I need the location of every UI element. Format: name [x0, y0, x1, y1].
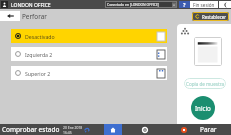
button[interactable]: Comprobar estado: [2, 124, 60, 135]
button[interactable]: Copia de muestra: [184, 78, 226, 89]
staticText: Fin sesión: [193, 2, 215, 8]
staticText: Conectado en [LONDON OFFICE]: [107, 2, 159, 7]
button[interactable]: Superior 2: [11, 66, 167, 80]
button[interactable]: Inicio: [191, 96, 215, 120]
staticText: Restablecer: [202, 14, 227, 20]
button[interactable]: Atrás: [0, 11, 20, 21]
button[interactable]: Atrás: [79, 124, 95, 135]
button[interactable]: Conectado en [LONDON OFFICE]: [105, 1, 177, 8]
staticText: LONDON OFFICE: [11, 2, 51, 9]
staticText: Comprobar estado: [2, 125, 60, 134]
staticText: Desactivado: [25, 33, 55, 40]
button[interactable]: Restablecer: [192, 12, 229, 21]
staticText: ?: [183, 1, 186, 8]
staticText: Copia de muestra: [186, 81, 225, 87]
staticText: Izquierda 2: [25, 51, 53, 58]
button[interactable]: Suspender: [219, 1, 231, 8]
staticText: Inicio: [195, 104, 211, 112]
staticText: 16:45: [63, 130, 72, 135]
button[interactable]: Desactivado: [11, 29, 167, 43]
button[interactable]: Parar: [177, 124, 231, 135]
staticText: Perforar: [22, 12, 47, 21]
button[interactable]: Ayuda: [179, 1, 190, 8]
button[interactable]: Ajustes: [137, 124, 153, 135]
button[interactable]: Inicio: [104, 124, 122, 135]
staticText: Parar: [200, 125, 217, 134]
staticText: 20 Ene 2018: [63, 125, 83, 130]
button[interactable]: Fin sesión: [190, 1, 218, 8]
staticText: Superior 2: [25, 70, 51, 77]
button[interactable]: Izquierda 2: [11, 47, 167, 61]
